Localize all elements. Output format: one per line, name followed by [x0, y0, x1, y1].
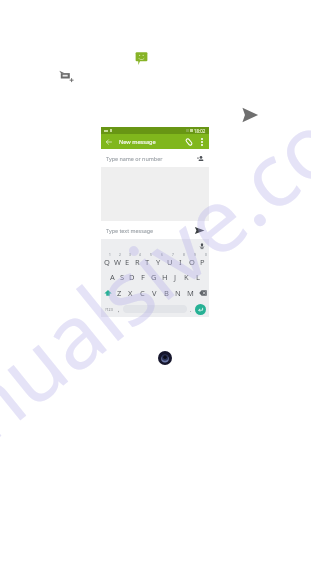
- button[interactable]: S: [117, 269, 127, 285]
- button[interactable]: 6: [153, 252, 164, 269]
- button[interactable]: Backspace: [196, 285, 209, 301]
- staticText: M: [187, 288, 194, 298]
- staticText: I: [179, 257, 182, 267]
- button[interactable]: 4: [132, 252, 142, 269]
- button[interactable]: G: [148, 269, 159, 285]
- staticText: 0: [205, 253, 207, 257]
- button[interactable]: 2: [112, 252, 122, 269]
- staticText: N: [175, 288, 181, 298]
- button[interactable]: .: [188, 303, 194, 315]
- staticText: A: [110, 272, 115, 282]
- staticText: P: [200, 257, 205, 267]
- staticText: 9: [194, 253, 196, 257]
- staticText: H: [162, 272, 168, 282]
- staticText: manualsive.com: [0, 31, 311, 548]
- button[interactable]: 1: [102, 252, 112, 269]
- button[interactable]: Z: [114, 285, 125, 301]
- staticText: B: [164, 288, 169, 298]
- button[interactable]: K: [181, 269, 192, 285]
- staticText: J: [174, 272, 177, 282]
- staticText: 6: [161, 253, 163, 257]
- staticText: 1: [109, 253, 111, 257]
- button[interactable]: 7: [164, 252, 175, 269]
- staticText: Q: [104, 257, 110, 267]
- button[interactable]: A: [107, 269, 117, 285]
- button[interactable]: New message: [59, 68, 74, 83]
- button[interactable]: More options: [196, 136, 207, 147]
- button[interactable]: Back: [101, 134, 116, 149]
- staticText: .: [190, 306, 192, 313]
- button[interactable]: D: [127, 269, 137, 285]
- staticText: 3: [129, 253, 131, 257]
- button[interactable]: 8: [175, 252, 186, 269]
- button[interactable]: 0: [197, 252, 208, 269]
- button[interactable]: H: [159, 269, 170, 285]
- staticText: Y: [156, 257, 161, 267]
- button[interactable]: N: [172, 285, 184, 301]
- staticText: Z: [117, 288, 122, 298]
- staticText: T: [145, 257, 150, 267]
- staticText: 18:02: [194, 128, 206, 134]
- button[interactable]: Send message: [191, 222, 207, 238]
- staticText: Type text message: [106, 227, 154, 234]
- staticText: C: [140, 288, 145, 298]
- button[interactable]: Attach: [182, 135, 196, 149]
- staticText: U: [167, 257, 173, 267]
- button[interactable]: Shift: [101, 285, 114, 301]
- button[interactable]: 9: [186, 252, 197, 269]
- button[interactable]: 3: [122, 252, 132, 269]
- button[interactable]: F: [137, 269, 148, 285]
- staticText: V: [152, 288, 157, 298]
- button[interactable]: J: [170, 269, 181, 285]
- button[interactable]: M: [184, 285, 196, 301]
- staticText: Type name or number: [106, 155, 163, 162]
- button[interactable]: Add contact: [194, 152, 207, 165]
- staticText: O: [189, 257, 195, 267]
- staticText: S: [120, 272, 125, 282]
- button[interactable]: Send: [241, 106, 259, 124]
- staticText: D: [129, 272, 135, 282]
- button[interactable]: X: [125, 285, 136, 301]
- staticText: ?123: [105, 307, 113, 312]
- staticText: K: [184, 272, 189, 282]
- button[interactable]: 5: [142, 252, 153, 269]
- staticText: 2: [119, 253, 121, 257]
- button[interactable]: ?123: [103, 303, 115, 315]
- button[interactable]: B: [160, 285, 172, 301]
- staticText: L: [196, 272, 200, 282]
- button[interactable]: ,: [116, 303, 122, 315]
- staticText: 4: [139, 253, 141, 257]
- staticText: G: [151, 272, 157, 282]
- staticText: ,: [118, 306, 120, 313]
- button[interactable]: Space: [123, 305, 187, 313]
- staticText: W: [114, 257, 121, 267]
- staticText: 7: [172, 253, 174, 257]
- button[interactable]: V: [148, 285, 160, 301]
- staticText: X: [128, 288, 133, 298]
- staticText: 5: [150, 253, 152, 257]
- button[interactable]: L: [192, 269, 203, 285]
- staticText: F: [141, 272, 145, 282]
- button[interactable]: C: [136, 285, 148, 301]
- button[interactable]: Enter: [195, 304, 206, 315]
- staticText: New message: [119, 138, 156, 146]
- staticText: E: [125, 257, 130, 267]
- staticText: R: [135, 257, 140, 267]
- staticText: 8: [183, 253, 185, 257]
- button[interactable]: Voice input: [197, 241, 206, 250]
